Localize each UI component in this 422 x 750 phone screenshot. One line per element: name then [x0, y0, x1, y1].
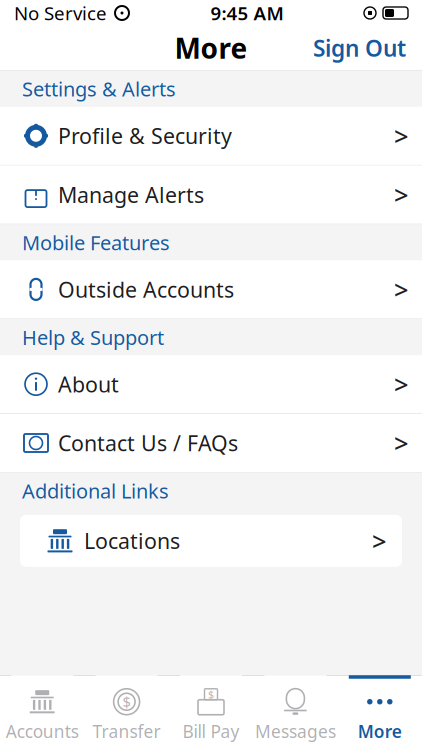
staticText: >	[394, 119, 408, 153]
button[interactable]: Manage Alerts	[0, 166, 422, 224]
staticText: More	[358, 720, 402, 743]
staticText: $	[123, 692, 131, 711]
button[interactable]: Locations	[20, 515, 402, 567]
staticText: >	[394, 273, 408, 306]
staticText: Bill Pay	[182, 720, 239, 743]
staticText: 9:45 AM	[210, 1, 283, 25]
staticText: $	[208, 687, 214, 701]
staticText: Messages	[255, 720, 336, 743]
staticText: No Service	[14, 1, 107, 25]
staticText: Outside Accounts	[58, 275, 234, 303]
staticText: Sign Out	[313, 33, 406, 63]
button[interactable]: More	[338, 676, 422, 750]
staticText: About	[58, 370, 119, 398]
staticText: Locations	[84, 527, 180, 555]
button[interactable]: Contact Us / FAQs	[0, 414, 422, 473]
staticText: Settings & Alerts	[22, 75, 176, 102]
button[interactable]: Messages	[253, 676, 338, 750]
staticText: >	[372, 524, 386, 558]
staticText: Accounts	[6, 720, 79, 743]
staticText: More	[174, 29, 247, 67]
button[interactable]: Outside Accounts	[0, 260, 422, 319]
staticText: Transfer	[93, 720, 161, 743]
staticText: >	[394, 367, 408, 401]
staticText: Profile & Security	[58, 122, 232, 150]
button[interactable]: About	[0, 355, 422, 414]
staticText: Additional Links	[22, 477, 169, 504]
button[interactable]: $	[84, 676, 169, 750]
staticText: Help & Support	[22, 324, 164, 350]
staticText: Mobile Features	[22, 229, 170, 256]
staticText: Manage Alerts	[58, 180, 204, 209]
staticText: Contact Us / FAQs	[58, 429, 238, 457]
staticText: >	[394, 178, 408, 211]
button[interactable]: $	[169, 676, 253, 750]
button[interactable]: Sign Out	[297, 25, 422, 71]
staticText: >	[394, 426, 408, 460]
button[interactable]: Accounts	[0, 676, 84, 750]
button[interactable]: Profile & Security	[0, 107, 422, 166]
